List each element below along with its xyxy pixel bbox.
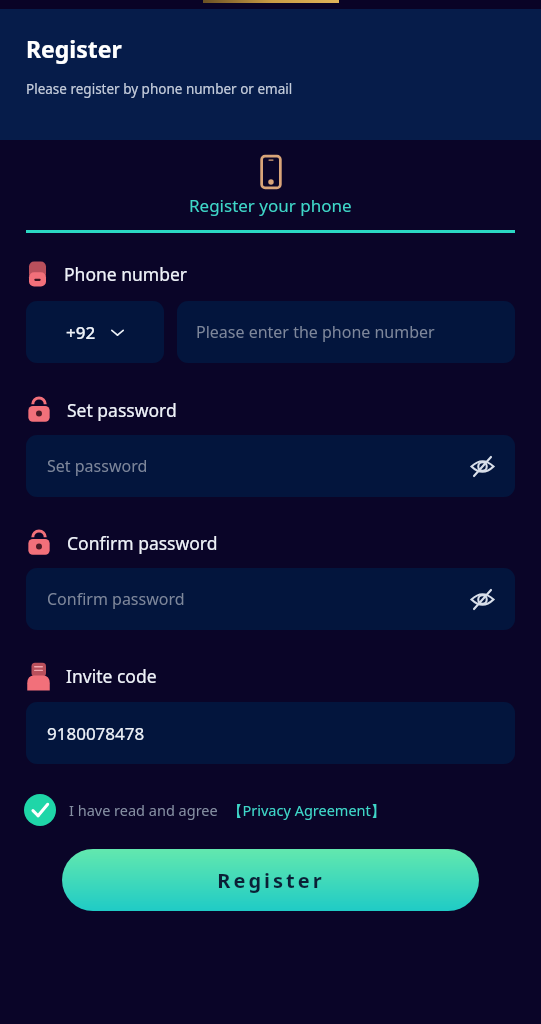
staticText: Please register by phone number or email <box>26 80 293 98</box>
staticText: I have read and agree <box>69 800 218 820</box>
other: Register your phone <box>258 154 284 190</box>
staticText: Invite code <box>66 664 157 688</box>
staticText: Register <box>26 33 122 64</box>
staticText: 9180078478 <box>47 722 145 745</box>
button[interactable]: 9180078478 <box>26 702 515 764</box>
button[interactable]: Show password <box>465 449 499 483</box>
button[interactable]: Set password <box>26 435 515 497</box>
staticText: Set password <box>67 398 177 422</box>
staticText: Confirm password <box>47 588 185 610</box>
staticText: Confirm password <box>67 531 218 555</box>
button[interactable]: Register your phone <box>0 140 541 233</box>
button[interactable]: Please enter the phone number <box>177 301 515 363</box>
staticText: +92 <box>66 321 96 344</box>
staticText: Register <box>217 867 325 894</box>
staticText: Register your phone <box>189 194 352 217</box>
staticText: Phone number <box>64 262 188 286</box>
staticText: Please enter the phone number <box>196 321 435 343</box>
button[interactable]: +92 <box>26 301 164 363</box>
button[interactable]: Confirm password <box>26 568 515 630</box>
other: Agree to privacy agreement <box>24 794 56 826</box>
button[interactable]: Agree to privacy agreement <box>24 794 386 826</box>
staticText: Set password <box>47 455 148 477</box>
button[interactable]: 【Privacy Agreement】 <box>228 800 386 820</box>
button[interactable]: Show password <box>465 582 499 616</box>
button[interactable]: Register <box>62 849 479 911</box>
